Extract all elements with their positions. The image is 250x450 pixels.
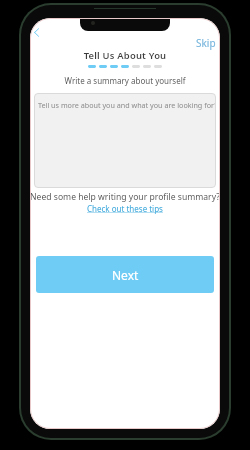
staticText: Skip <box>196 36 216 50</box>
staticText: Next <box>112 267 139 283</box>
button[interactable]: Next <box>36 256 214 293</box>
button[interactable]: Skip <box>194 35 218 51</box>
staticText: Tell us more about you and what you are … <box>38 100 216 110</box>
staticText: Need some help writing your profile summ… <box>30 191 220 203</box>
button[interactable]: Tell us more about you and what you are … <box>34 93 216 188</box>
button[interactable]: Back <box>30 24 45 40</box>
staticText: Write a summary about yourself <box>30 75 220 86</box>
staticText: Tell Us About You <box>30 49 220 62</box>
button[interactable]: Check out these tips <box>87 203 163 214</box>
